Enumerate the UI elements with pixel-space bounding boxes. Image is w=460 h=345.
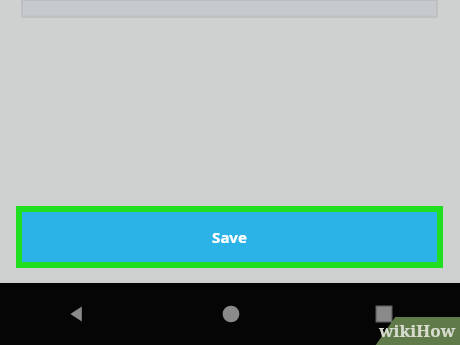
button[interactable]: Save bbox=[22, 212, 437, 262]
button[interactable]: Home bbox=[154, 283, 307, 345]
staticText: Save bbox=[212, 227, 247, 247]
button[interactable]: Recent apps bbox=[307, 283, 460, 345]
staticText: wikiHow bbox=[379, 319, 456, 342]
button[interactable]: Back bbox=[0, 283, 154, 345]
button[interactable] bbox=[22, 0, 437, 17]
